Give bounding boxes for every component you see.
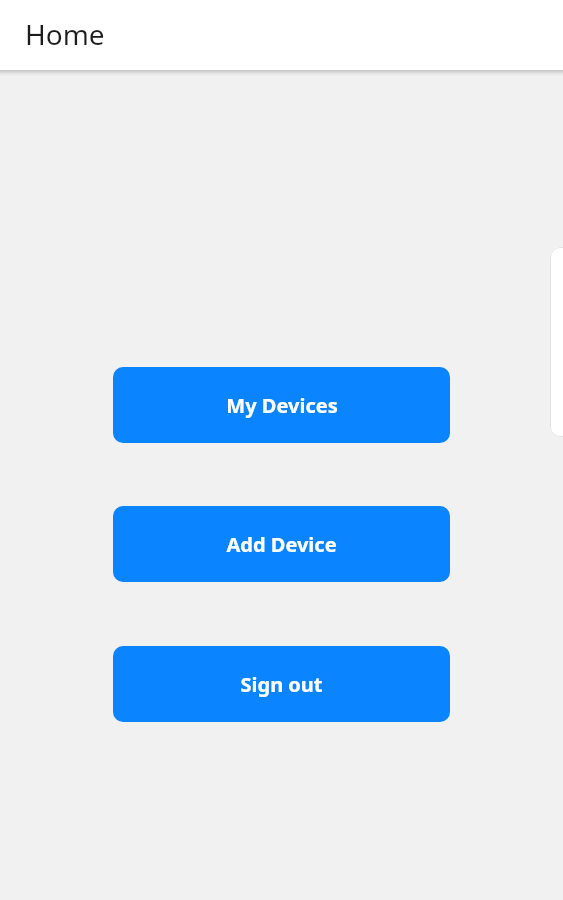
staticText: Sign out xyxy=(240,671,323,698)
staticText: My Devices xyxy=(226,392,338,419)
button[interactable]: Add Device xyxy=(113,506,450,582)
staticText: Home xyxy=(25,15,105,53)
staticText: Add Device xyxy=(226,531,337,558)
button[interactable]: My Devices xyxy=(113,367,450,443)
button[interactable]: Sign out xyxy=(113,646,450,722)
